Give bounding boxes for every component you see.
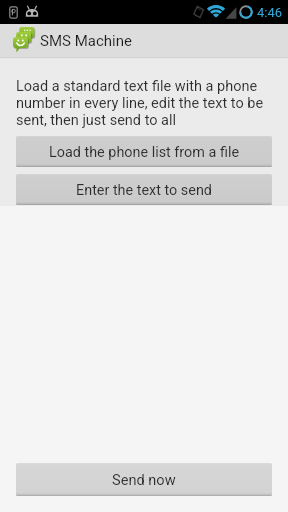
button[interactable]: Enter the text to send	[16, 174, 272, 205]
button[interactable]: Load the phone list from a file	[16, 136, 272, 167]
staticText: Load the phone list from a file	[49, 144, 240, 161]
staticText: Load a standard text file with a phone n…	[16, 78, 272, 129]
staticText: SMS Machine	[40, 32, 132, 50]
staticText: Send now	[112, 471, 176, 488]
staticText: Enter the text to send	[76, 182, 212, 199]
staticText: 4:46	[257, 5, 283, 20]
button[interactable]: Send now	[16, 463, 272, 496]
